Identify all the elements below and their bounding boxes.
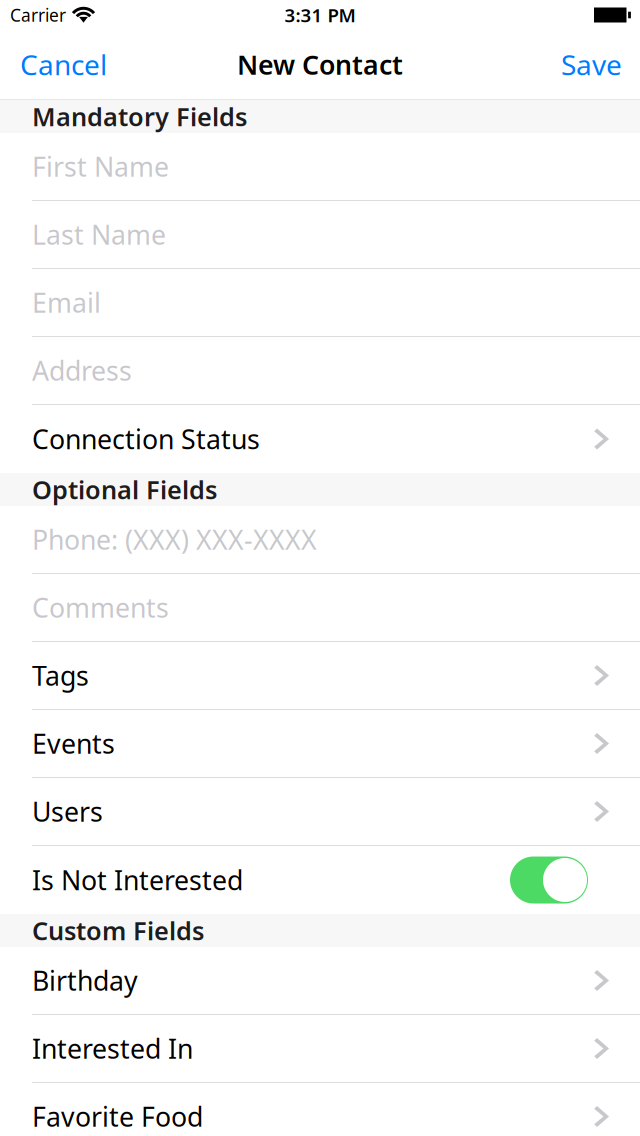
button[interactable]: Cancel [0,40,132,89]
staticText: Users [32,794,103,829]
staticText: Interested In [32,1031,193,1066]
staticText: 3:31 PM [284,3,355,27]
staticText: Last Name [32,217,166,252]
button[interactable]: Events [0,710,640,777]
button[interactable]: Address [0,337,640,404]
button[interactable]: First Name [0,133,640,200]
staticText: New Contact [237,47,403,82]
staticText: First Name [32,149,169,184]
staticText: Address [32,353,132,388]
staticText: Connection Status [32,421,260,457]
staticText: Comments [32,590,169,625]
staticText: Cancel [20,46,107,83]
staticText: Birthday [32,963,138,998]
staticText: Custom Fields [32,914,204,947]
button[interactable]: Comments [0,574,640,641]
staticText: Events [32,726,115,761]
button[interactable]: Phone: (XXX) XXX-XXXX [0,506,640,573]
button[interactable]: Save [508,40,640,89]
staticText: Phone: (XXX) XXX-XXXX [32,522,317,557]
button[interactable]: Connection Status [0,405,640,473]
staticText: Mandatory Fields [32,100,247,133]
staticText: Save [561,46,622,83]
staticText: Optional Fields [32,473,217,506]
staticText: Email [32,285,101,320]
button[interactable]: Users [0,778,640,845]
button[interactable]: Is Not Interested [510,856,588,903]
button[interactable]: Favorite Food [0,1083,640,1136]
staticText: Is Not Interested [32,862,243,898]
button[interactable]: Birthday [0,947,640,1014]
button[interactable]: Email [0,269,640,336]
staticText: Favorite Food [32,1099,203,1134]
staticText: Tags [32,658,89,693]
button[interactable]: Interested In [0,1015,640,1082]
staticText: Carrier [10,3,66,26]
button[interactable]: Tags [0,642,640,709]
button[interactable]: Last Name [0,201,640,268]
